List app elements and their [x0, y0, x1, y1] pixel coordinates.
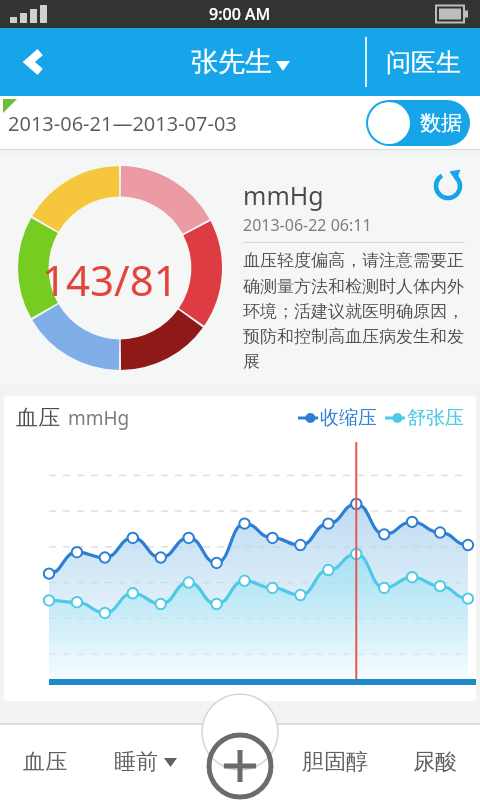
- button[interactable]: Refresh: [430, 168, 466, 204]
- staticText: mmHg: [243, 178, 324, 212]
- staticText: 收缩压: [320, 406, 377, 430]
- staticText: 143/81: [42, 251, 178, 308]
- staticText: 胆固醇: [302, 748, 368, 776]
- staticText: mmHg: [68, 405, 130, 431]
- button[interactable]: Add record: [206, 732, 274, 800]
- staticText: 尿酸: [413, 748, 457, 776]
- button[interactable]: 胆固醇: [280, 724, 390, 800]
- button[interactable]: 问医生: [366, 28, 480, 96]
- button[interactable]: 尿酸: [390, 724, 480, 800]
- staticText: 睡前: [114, 748, 158, 776]
- button[interactable]: 数据: [366, 100, 470, 146]
- staticText: 数据: [420, 110, 462, 136]
- button[interactable]: 血压: [0, 724, 90, 800]
- staticText: 血压轻度偏高，请注意需要正确测量方法和检测时人体内外环境；活建议就医明确原因，预…: [243, 250, 465, 372]
- staticText: 张先生: [191, 45, 272, 79]
- staticText: 问医生: [386, 47, 461, 78]
- staticText: 9:00 AM: [209, 3, 271, 25]
- staticText: 血压: [23, 748, 67, 776]
- staticText: 舒张压: [407, 406, 464, 430]
- staticText: 2013-06-21—2013-07-03: [8, 110, 237, 137]
- button[interactable]: 张先生: [191, 45, 290, 79]
- staticText: 2013-06-22 06:11: [243, 214, 372, 236]
- button[interactable]: Back: [0, 28, 70, 96]
- button[interactable]: 睡前: [90, 724, 200, 800]
- staticText: 血压: [16, 404, 60, 432]
